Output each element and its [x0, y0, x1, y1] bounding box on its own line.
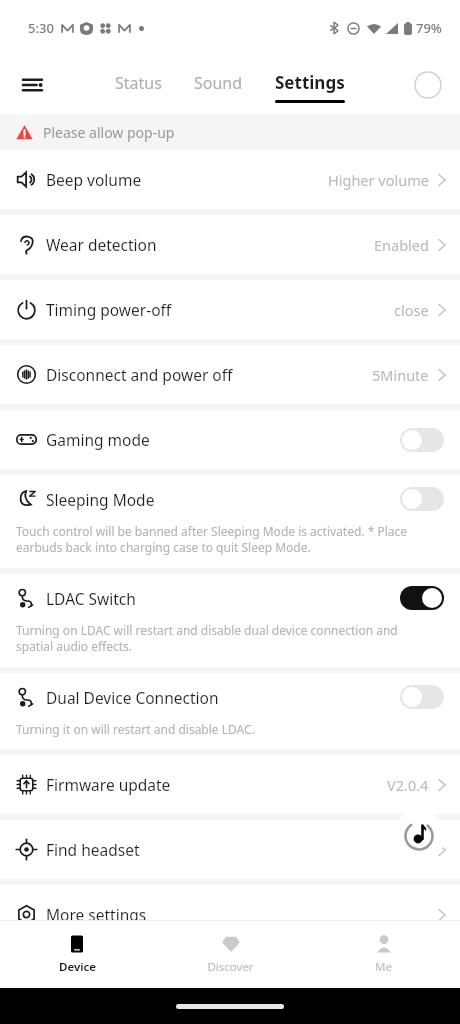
button[interactable]: Gaming mode toggle [400, 428, 444, 452]
button[interactable]: Me [307, 920, 460, 988]
button[interactable]: LDAC Switch toggle [400, 586, 444, 610]
button[interactable]: More settings [0, 885, 460, 944]
button[interactable]: Dual Device Connection toggle [400, 685, 444, 709]
button[interactable]: Sleeping Mode toggle [400, 487, 444, 511]
staticText: More settings [46, 904, 147, 925]
button[interactable]: Settings [271, 71, 349, 103]
button[interactable]: Gaming mode [0, 410, 460, 469]
button[interactable]: LDAC Switch [0, 574, 460, 667]
staticText: 5Minute [372, 365, 429, 385]
button[interactable]: Find headset [0, 820, 460, 879]
button[interactable]: Menu [12, 63, 56, 107]
staticText: Turning on LDAC will restart and disable… [16, 622, 434, 655]
staticText: Timing power-off [46, 299, 172, 320]
staticText: 79% [416, 19, 442, 37]
staticText: Please allow pop-up [43, 123, 175, 142]
button[interactable]: Beep volume [0, 150, 460, 209]
staticText: LDAC Switch [46, 588, 136, 609]
staticText: Gaming mode [46, 429, 150, 450]
button[interactable]: Wear detection [0, 215, 460, 274]
staticText: Sleeping Mode [46, 489, 155, 510]
staticText: Sound [194, 72, 243, 94]
button[interactable]: Play music [393, 810, 445, 862]
staticText: V2.0.4 [387, 775, 429, 795]
staticText: Turning it on will restart and disable L… [16, 721, 255, 737]
button[interactable]: Profile [414, 71, 442, 99]
button[interactable]: Firmware update [0, 755, 460, 814]
staticText: Firmware update [46, 774, 171, 795]
button[interactable]: Sleeping Mode [0, 475, 460, 568]
staticText: Beep volume [46, 169, 142, 190]
staticText: Settings [275, 71, 345, 94]
staticText: Find headset [46, 839, 140, 860]
button[interactable]: Status [111, 72, 166, 103]
staticText: Status [115, 72, 162, 94]
staticText: Enabled [374, 235, 429, 255]
staticText: Dual Device Connection [46, 687, 219, 708]
button[interactable]: Please allow pop-up [0, 114, 460, 150]
staticText: Discover [207, 959, 254, 975]
button[interactable]: Timing power-off [0, 280, 460, 339]
staticText: Disconnect and power off [46, 364, 233, 385]
button[interactable]: Disconnect and power off [0, 345, 460, 404]
staticText: Higher volume [328, 170, 429, 190]
button[interactable]: Sound [190, 72, 247, 103]
button[interactable]: Dual Device Connection [0, 673, 460, 749]
button[interactable]: Discover [154, 920, 307, 988]
staticText: Wear detection [46, 234, 157, 255]
staticText: Device [59, 959, 96, 975]
staticText: Touch control will be banned after Sleep… [16, 523, 434, 556]
staticText: 5:30 [28, 19, 54, 37]
staticText: Me [375, 959, 392, 975]
button[interactable]: Device [0, 920, 154, 988]
staticText: close [394, 300, 429, 320]
